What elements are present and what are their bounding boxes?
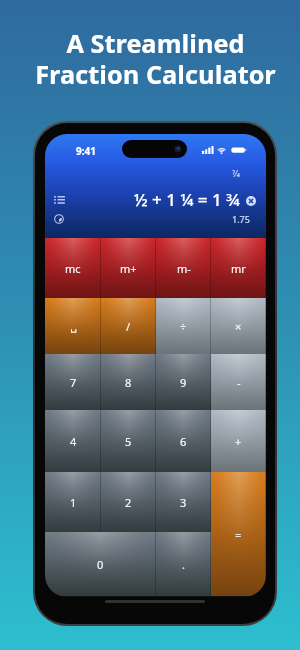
staticText: mr — [231, 261, 246, 276]
button[interactable]: 0 — [45, 532, 156, 596]
button[interactable]: = — [211, 472, 266, 596]
staticText: / — [126, 319, 131, 334]
button[interactable]: . — [156, 532, 211, 596]
button[interactable]: 6 — [156, 410, 211, 472]
button[interactable]: 1 — [45, 472, 101, 532]
staticText: + — [235, 434, 242, 449]
button[interactable]: ␣ — [45, 298, 101, 354]
staticText: 9 — [180, 375, 187, 390]
staticText: 2 — [125, 495, 132, 510]
button[interactable]: History — [48, 191, 70, 209]
button[interactable]: - — [211, 354, 266, 410]
staticText: 3 — [180, 495, 187, 510]
staticText: 9:41 — [76, 144, 96, 158]
button[interactable]: mc — [45, 238, 101, 298]
button[interactable]: Clear — [244, 194, 257, 207]
staticText: A Streamlined — [66, 26, 245, 60]
staticText: ½ + 1 ¼ = 1 ¾ — [134, 188, 240, 211]
staticText: m+ — [120, 261, 137, 276]
button[interactable]: × — [211, 298, 266, 354]
button[interactable]: m- — [156, 238, 211, 298]
button[interactable]: Display mode — [48, 210, 70, 228]
button[interactable]: ÷ — [156, 298, 211, 354]
staticText: 5 — [125, 434, 132, 449]
staticText: × — [235, 319, 242, 334]
button[interactable]: mr — [211, 238, 266, 298]
staticText: - — [237, 375, 241, 390]
button[interactable]: 7 — [45, 354, 101, 410]
button[interactable]: 5 — [101, 410, 156, 472]
staticText: m- — [177, 261, 191, 276]
button[interactable]: 9 — [156, 354, 211, 410]
staticText: 1.75 — [232, 213, 250, 225]
staticText: 6 — [180, 434, 187, 449]
button[interactable]: / — [101, 298, 156, 354]
staticText: 8 — [125, 375, 132, 390]
button[interactable]: + — [211, 410, 266, 472]
button[interactable]: 4 — [45, 410, 101, 472]
button[interactable]: 2 — [101, 472, 156, 532]
staticText: 0 — [97, 557, 104, 572]
button[interactable]: m+ — [101, 238, 156, 298]
button[interactable]: 8 — [101, 354, 156, 410]
staticText: = — [235, 527, 242, 542]
staticText: 7⁄4 — [232, 167, 240, 179]
staticText: 4 — [70, 434, 77, 449]
staticText: mc — [65, 261, 81, 276]
staticText: ␣ — [70, 320, 77, 333]
staticText: ÷ — [180, 319, 187, 334]
staticText: . — [182, 557, 185, 572]
button[interactable]: 3 — [156, 472, 211, 532]
staticText: 1 — [70, 495, 77, 510]
staticText: 7 — [70, 375, 77, 390]
staticText: Fraction Calculator — [35, 57, 276, 91]
